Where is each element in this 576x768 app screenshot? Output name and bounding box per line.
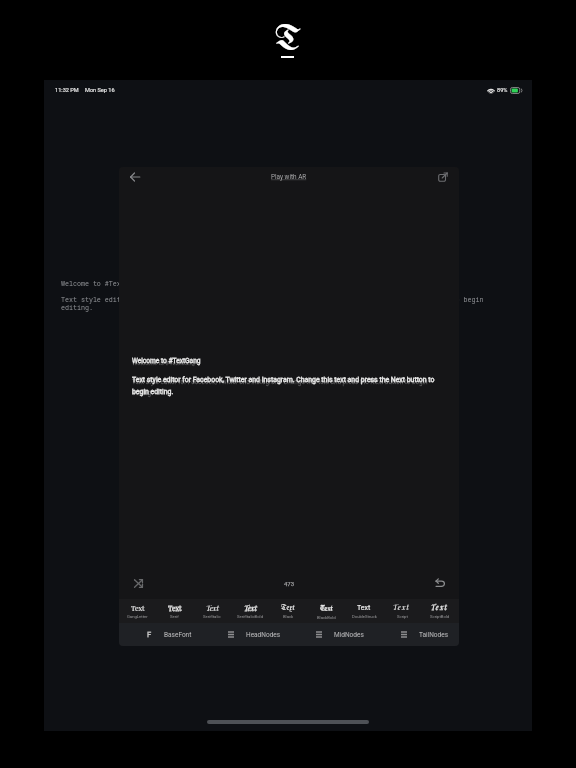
button[interactable]: Play with AR (271, 173, 307, 181)
button[interactable]: Undo (429, 572, 451, 594)
staticText: Play with AR (271, 173, 307, 181)
staticText: Text style editor for Facebook, Twitter … (61, 295, 506, 312)
staticText: Welcome to #TextGang (61, 279, 141, 288)
staticText: Text (393, 603, 411, 612)
staticText: SerifItalicBold (237, 614, 263, 619)
button[interactable]: Text (269, 599, 307, 623)
staticText: SerifItalic (203, 614, 221, 619)
staticText: MidNodes (334, 631, 364, 639)
staticText: Text (357, 604, 371, 612)
staticText: Text style editor for Facebook, Twitter … (132, 378, 442, 396)
staticText: Text (320, 603, 333, 613)
staticText: 473 (284, 580, 295, 587)
staticText: Text (168, 603, 182, 612)
staticText: ScriptBold (430, 614, 450, 619)
staticText: Script (397, 614, 408, 619)
staticText: Black (283, 614, 294, 619)
staticText: HeadNodes (246, 631, 281, 639)
staticText: Text (281, 604, 295, 612)
staticText: Text (206, 603, 219, 612)
staticText: Serif (170, 614, 179, 619)
staticText: T (275, 22, 302, 58)
staticText: GangLetter (127, 614, 148, 619)
button[interactable]: HeadNodes (204, 623, 289, 646)
staticText: TailNodes (419, 631, 449, 639)
button[interactable]: Text (119, 599, 156, 623)
staticText: Text style editor for Facebook, Twitter … (132, 376, 442, 396)
staticText: Text (131, 603, 145, 612)
button[interactable]: Back (125, 167, 145, 187)
staticText: BlackBold (317, 615, 336, 620)
button[interactable]: MidNodes (289, 623, 374, 646)
staticText: BaseFont (164, 631, 192, 639)
staticText: F (147, 630, 152, 639)
button[interactable]: Open in AR (433, 167, 453, 187)
button[interactable]: Text (156, 599, 193, 623)
staticText: 89% (497, 87, 508, 94)
button[interactable]: Text (345, 599, 383, 623)
button[interactable]: F (119, 623, 204, 646)
staticText: DoubleStruck (352, 614, 377, 619)
button[interactable]: Text (421, 599, 459, 623)
staticText: Text (431, 603, 449, 612)
button[interactable]: Text (231, 599, 269, 623)
staticText: 11:32 PM (55, 87, 79, 94)
staticText: Welcome to #TextGang (132, 357, 201, 365)
button[interactable]: Text (383, 599, 421, 623)
button[interactable]: Shuffle (127, 572, 149, 594)
button[interactable]: TailNodes (374, 623, 459, 646)
button[interactable]: Text (307, 599, 345, 623)
button[interactable]: Text (193, 599, 231, 623)
staticText: Mon Sep 16 (85, 87, 115, 94)
staticText: Welcome to #TextGang (132, 359, 195, 366)
staticText: Text (244, 603, 257, 612)
